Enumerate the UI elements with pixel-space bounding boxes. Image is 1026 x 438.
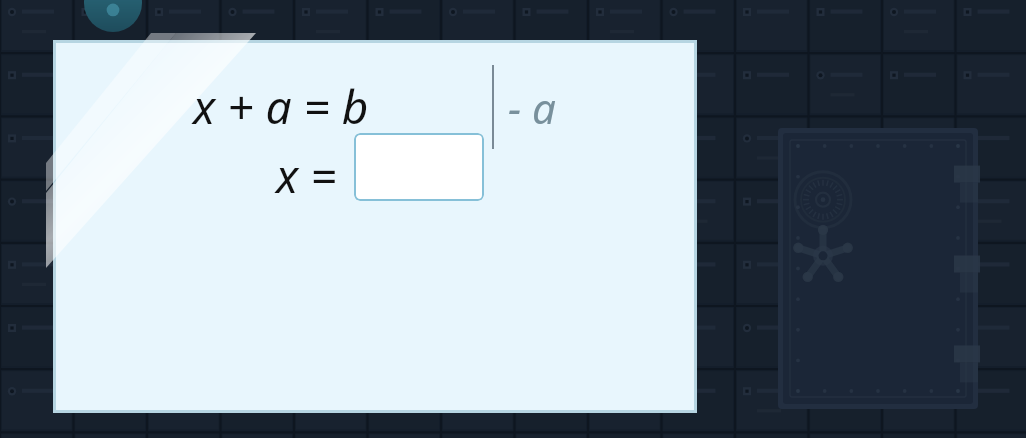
button[interactable]: Answer input xyxy=(354,133,484,201)
button[interactable]: Vault door xyxy=(778,128,978,409)
staticText: x = xyxy=(276,144,337,207)
button[interactable]: - a xyxy=(508,79,556,136)
staticText: x + a = b xyxy=(193,75,369,138)
